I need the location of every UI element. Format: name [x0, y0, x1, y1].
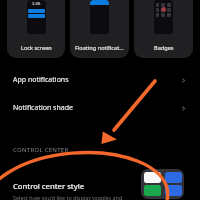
staticText: App notifications [13, 75, 179, 85]
staticText: Control center style [13, 181, 85, 191]
button[interactable]: Notification shade [0, 94, 200, 122]
staticText: Badges [154, 44, 174, 52]
other: Open [179, 76, 188, 85]
staticText: 2:36 [32, 1, 41, 7]
button[interactable]: Badges [134, 0, 193, 58]
button[interactable]: Floating notificat... [70, 0, 129, 58]
staticText: Notification shade [13, 103, 179, 113]
button[interactable]: App notifications [0, 66, 200, 94]
other: Open [179, 104, 188, 113]
button[interactable]: 2:36 [7, 0, 65, 58]
staticText: CONTROL CENTER [13, 146, 69, 154]
staticText: Select how you'd like to display toggles… [13, 194, 123, 200]
button[interactable]: Control center style [0, 170, 200, 200]
staticText: Lock screen [21, 44, 52, 52]
staticText: Floating notificat... [75, 44, 124, 52]
